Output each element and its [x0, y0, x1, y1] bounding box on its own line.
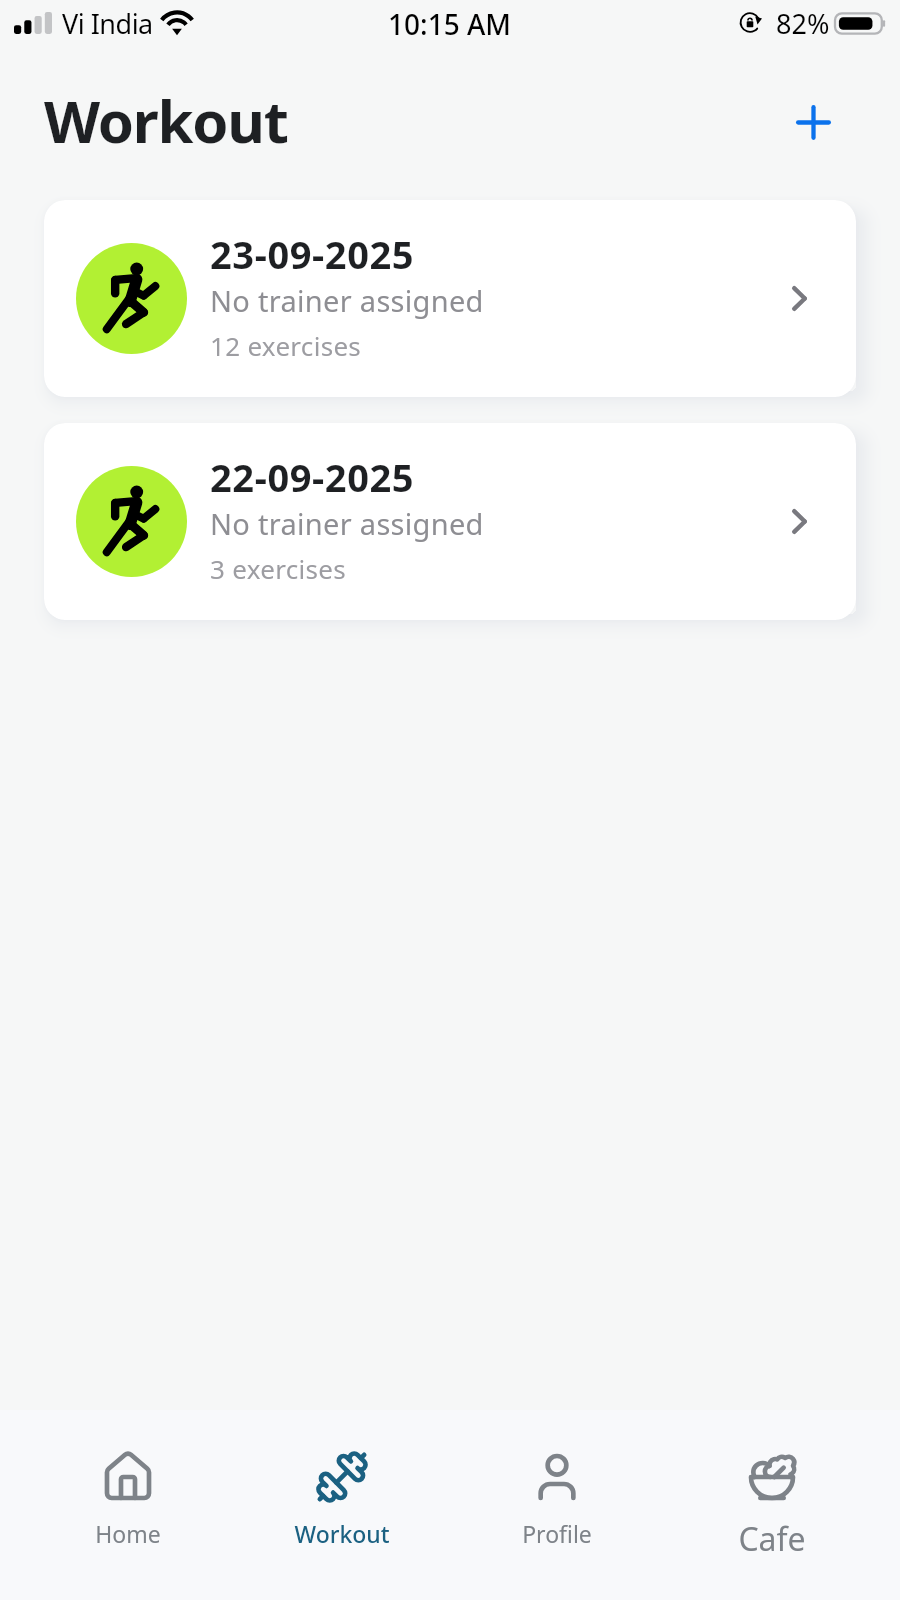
button[interactable]: Workout	[235, 1410, 449, 1600]
staticText: Workout	[294, 1518, 390, 1549]
staticText: 12 exercises	[210, 328, 362, 363]
staticText: 23-09-2025	[210, 228, 415, 280]
staticText: 22-09-2025	[210, 451, 415, 503]
button[interactable]: Home	[21, 1410, 235, 1600]
button[interactable]: 23-09-2025	[44, 200, 856, 397]
staticText: Home	[95, 1518, 161, 1549]
staticText: Profile	[522, 1518, 592, 1549]
staticText: 3 exercises	[210, 551, 346, 586]
staticText: No trainer assigned	[210, 281, 484, 320]
button[interactable]: Add workout	[785, 93, 841, 149]
staticText: No trainer assigned	[210, 504, 484, 543]
button[interactable]: Cafe	[664, 1410, 879, 1600]
button[interactable]: Profile	[449, 1410, 664, 1600]
staticText: Cafe	[738, 1517, 806, 1561]
staticText: 82%	[776, 5, 830, 42]
staticText: Workout	[44, 81, 288, 160]
staticText: 10:15 AM	[388, 5, 512, 43]
button[interactable]: 22-09-2025	[44, 423, 856, 620]
staticText: Vi India	[62, 5, 153, 42]
